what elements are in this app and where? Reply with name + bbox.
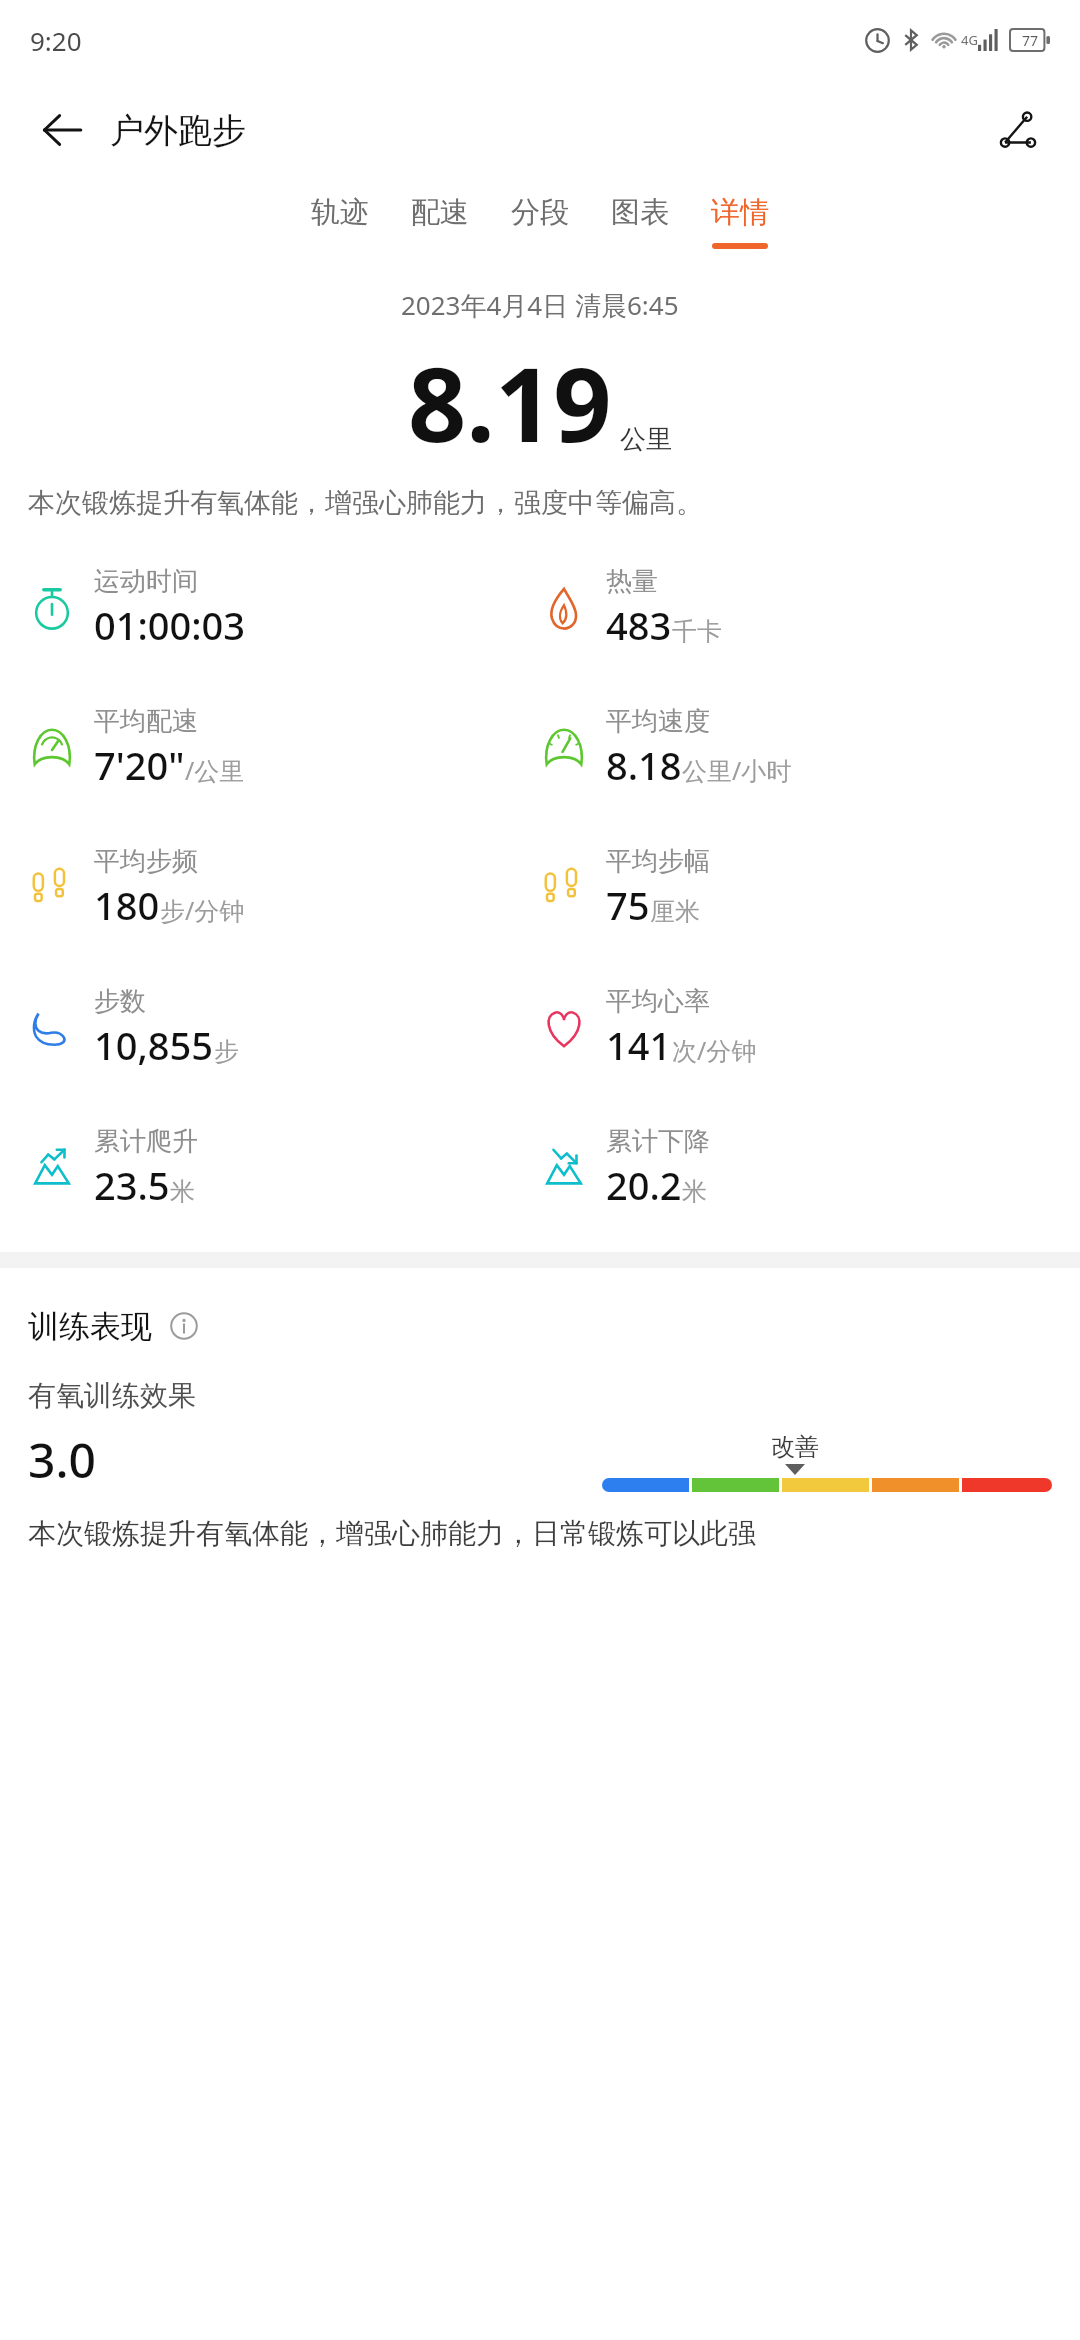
button[interactable]: 累计爬升 bbox=[28, 1098, 540, 1238]
button[interactable]: 分享 bbox=[982, 94, 1054, 166]
staticText: 详情 bbox=[711, 194, 769, 231]
button[interactable]: 说明 bbox=[164, 1306, 204, 1346]
button[interactable]: 返回 bbox=[26, 94, 98, 166]
staticText: 累计爬升 bbox=[94, 1125, 198, 1158]
staticText: 141 bbox=[606, 1019, 672, 1071]
staticText: 厘米 bbox=[650, 896, 700, 927]
staticText: 77 bbox=[1022, 31, 1039, 50]
staticText: 本次锻炼提升有氧体能，增强心肺能力，日常锻炼可以此强 bbox=[28, 1516, 756, 1551]
staticText: 平均心率 bbox=[606, 985, 710, 1018]
staticText: 米 bbox=[682, 1176, 707, 1207]
staticText: 平均步幅 bbox=[606, 845, 710, 878]
staticText: 3.0 bbox=[28, 1427, 96, 1492]
staticText: 20.2 bbox=[606, 1159, 682, 1211]
staticText: 01:00:03 bbox=[94, 599, 246, 651]
staticText: 本次锻炼提升有氧体能，增强心肺能力，强度中等偏高。 bbox=[28, 486, 1052, 520]
staticText: 米 bbox=[170, 1176, 195, 1207]
button[interactable]: 累计下降 bbox=[540, 1098, 1052, 1238]
staticText: /公里 bbox=[185, 753, 245, 787]
staticText: 图表 bbox=[611, 194, 669, 231]
staticText: 户外跑步 bbox=[110, 109, 246, 152]
staticText: 公里/小时 bbox=[682, 753, 792, 787]
button[interactable]: 详情 bbox=[690, 186, 790, 257]
staticText: 平均步频 bbox=[94, 845, 198, 878]
staticText: 2023年4月4日 清晨6:45 bbox=[401, 287, 679, 323]
button[interactable]: 热量 bbox=[540, 538, 1052, 678]
button[interactable]: 图表 bbox=[590, 186, 690, 257]
button[interactable]: 分段 bbox=[490, 186, 590, 257]
button[interactable]: 平均步幅 bbox=[540, 818, 1052, 958]
button[interactable]: 平均速度 bbox=[540, 678, 1052, 818]
staticText: 次/分钟 bbox=[672, 1033, 757, 1067]
button[interactable]: 平均心率 bbox=[540, 958, 1052, 1098]
staticText: 23.5 bbox=[94, 1159, 170, 1211]
staticText: 10,855 bbox=[94, 1019, 214, 1071]
staticText: 8.18 bbox=[606, 739, 682, 791]
staticText: 公里 bbox=[620, 423, 672, 456]
staticText: 改善 bbox=[771, 1432, 819, 1462]
staticText: 运动时间 bbox=[94, 565, 198, 598]
staticText: 步 bbox=[214, 1036, 239, 1067]
staticText: 75 bbox=[606, 879, 650, 931]
staticText: 轨迹 bbox=[311, 194, 369, 231]
staticText: 9:20 bbox=[30, 23, 82, 58]
staticText: 8.19 bbox=[408, 333, 612, 472]
staticText: 训练表现 bbox=[28, 1307, 152, 1346]
button[interactable]: 平均配速 bbox=[28, 678, 540, 818]
staticText: 配速 bbox=[411, 194, 469, 231]
button[interactable]: 步数 bbox=[28, 958, 540, 1098]
staticText: 180 bbox=[94, 879, 160, 931]
staticText: 4G bbox=[961, 31, 978, 49]
staticText: 步数 bbox=[94, 985, 146, 1018]
staticText: 分段 bbox=[511, 194, 569, 231]
staticText: 热量 bbox=[606, 565, 658, 598]
staticText: 平均速度 bbox=[606, 705, 710, 738]
staticText: 7'20" bbox=[94, 739, 185, 791]
staticText: 步/分钟 bbox=[160, 893, 245, 927]
button[interactable]: 运动时间 bbox=[28, 538, 540, 678]
staticText: 累计下降 bbox=[606, 1125, 710, 1158]
button[interactable]: 配速 bbox=[390, 186, 490, 257]
button[interactable]: 轨迹 bbox=[290, 186, 390, 257]
staticText: 有氧训练效果 bbox=[28, 1378, 196, 1413]
staticText: 千卡 bbox=[672, 616, 722, 647]
staticText: 平均配速 bbox=[94, 705, 198, 738]
staticText: 483 bbox=[606, 599, 672, 651]
button[interactable]: 平均步频 bbox=[28, 818, 540, 958]
